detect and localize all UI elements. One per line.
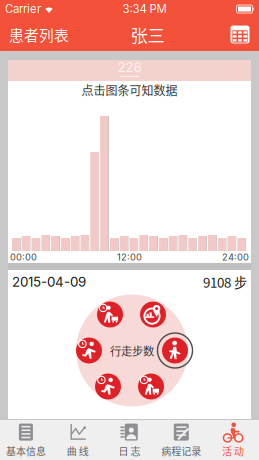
- button[interactable]: 基本信息: [0, 420, 52, 460]
- staticText: 日 志: [118, 444, 140, 458]
- button[interactable]: Running duration: [95, 373, 121, 399]
- staticText: 3:34 PM: [122, 2, 166, 16]
- staticText: 基本信息: [6, 444, 46, 458]
- staticText: 患者列表: [9, 24, 69, 45]
- staticText: 12:00: [117, 251, 142, 263]
- button[interactable]: 患者列表: [0, 18, 78, 51]
- staticText: Carrier: [5, 2, 41, 16]
- button[interactable]: Route: [140, 301, 166, 327]
- staticText: 点击图条可知数据: [81, 81, 177, 99]
- staticText: 病程记录: [161, 444, 201, 458]
- button[interactable]: 活 动: [207, 420, 259, 460]
- button[interactable]: Calendar: [221, 18, 259, 51]
- staticText: 活 动: [222, 444, 244, 458]
- button[interactable]: 日 志: [104, 420, 155, 460]
- staticText: 行走步数: [110, 342, 154, 359]
- staticText: 2015-04-09: [12, 274, 86, 290]
- staticText: 226: [117, 59, 141, 75]
- button[interactable]: Walking steps: [162, 337, 188, 363]
- staticText: 9108 步: [203, 272, 247, 292]
- staticText: 曲 线: [67, 444, 89, 458]
- button[interactable]: Shopping: [97, 301, 123, 327]
- button[interactable]: 病程记录: [155, 420, 207, 460]
- button[interactable]: Shopping duration: [138, 373, 164, 399]
- staticText: 24:00: [222, 251, 249, 263]
- staticText: 00:00: [10, 251, 37, 263]
- button[interactable]: 曲 线: [52, 420, 104, 460]
- staticText: 张三: [130, 22, 164, 47]
- button[interactable]: Running: [76, 337, 102, 363]
